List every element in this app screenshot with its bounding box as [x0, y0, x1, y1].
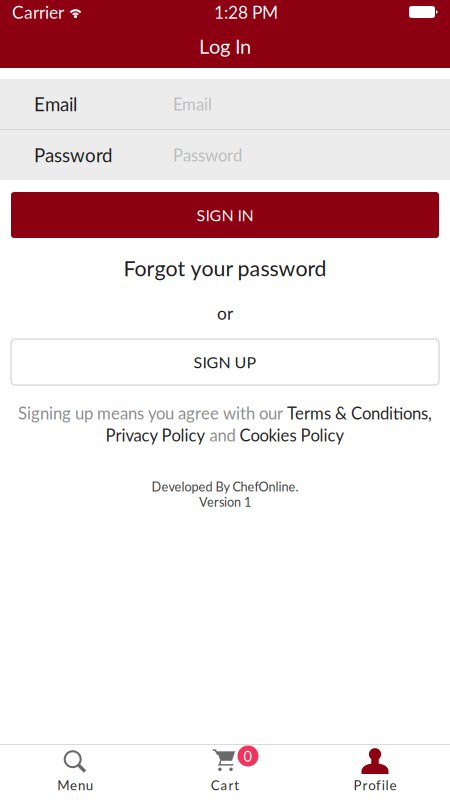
button[interactable]: SIGN IN	[11, 192, 439, 238]
staticText: Cookies Policy	[239, 425, 344, 445]
button[interactable]: SIGN UP	[11, 339, 439, 385]
staticText: Password	[34, 144, 112, 166]
staticText: or	[217, 303, 233, 323]
staticText: Developed By ChefOnline.	[151, 479, 298, 494]
staticText: and	[205, 425, 239, 445]
staticText: Forgot your password	[123, 255, 326, 281]
button[interactable]: Cart	[150, 745, 300, 800]
staticText: Log In	[199, 34, 251, 58]
button[interactable]: Forgot your password	[0, 238, 450, 298]
staticText: Profile	[354, 777, 396, 793]
staticText: 0	[243, 747, 252, 765]
staticText: Email	[173, 94, 212, 114]
staticText: Version 1	[199, 494, 251, 509]
staticText: Terms & Conditions,	[287, 403, 432, 423]
staticText: Menu	[57, 777, 93, 793]
staticText: Cart	[211, 777, 239, 793]
staticText: Signing up means you agree with our	[18, 403, 287, 423]
staticText: Privacy Policy	[105, 425, 205, 445]
staticText: SIGN IN	[196, 205, 253, 225]
staticText: Password	[173, 145, 242, 165]
button[interactable]: Profile	[300, 745, 450, 800]
staticText: 1:28 PM	[214, 2, 278, 22]
staticText: Email	[34, 93, 77, 115]
button[interactable]: Menu	[0, 745, 150, 800]
staticText: Carrier	[12, 2, 64, 22]
staticText: SIGN UP	[193, 352, 256, 372]
